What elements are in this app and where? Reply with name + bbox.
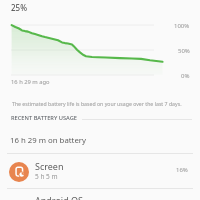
- staticText: 5 h 5 m: [35, 172, 58, 181]
- staticText: Screen: [35, 160, 64, 172]
- staticText: 50%: [178, 47, 190, 55]
- staticText: 25%: [11, 2, 27, 13]
- staticText: 16 h 29 m ago: [11, 78, 50, 86]
- staticText: RECENT BATTERY USAGE: [11, 114, 77, 122]
- staticText: 0%: [181, 72, 190, 80]
- staticText: The estimated battery life is based on y…: [12, 100, 182, 107]
- staticText: Android OS: [35, 194, 83, 200]
- staticText: 100%: [174, 22, 190, 30]
- staticText: 16 h 29 m on battery: [10, 135, 87, 146]
- staticText: 16%: [176, 166, 188, 174]
- button[interactable]: Screen: [0, 154, 200, 189]
